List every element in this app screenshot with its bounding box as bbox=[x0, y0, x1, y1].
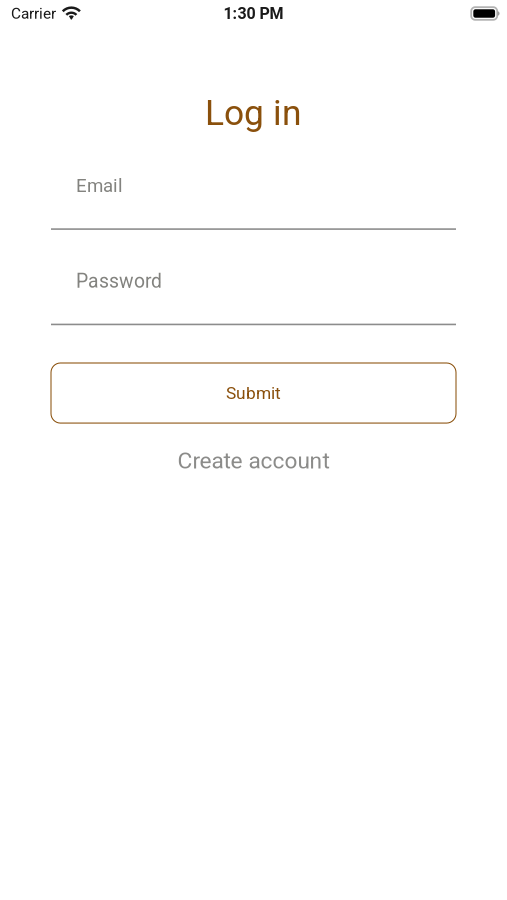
button[interactable]: Submit bbox=[51, 363, 456, 423]
staticText: Submit bbox=[226, 383, 281, 403]
staticText: 1:30 PM bbox=[223, 4, 283, 23]
staticText: Email bbox=[76, 175, 123, 197]
staticText: Password bbox=[76, 270, 162, 293]
staticText: Carrier bbox=[11, 4, 56, 22]
staticText: Log in bbox=[205, 92, 302, 134]
staticText: Create account bbox=[177, 447, 329, 474]
button[interactable]: Create account bbox=[51, 447, 456, 475]
